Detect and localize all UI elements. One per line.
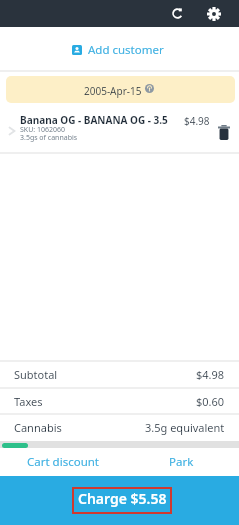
staticText: Banana OG - BANANA OG - 3.5 [20,113,168,127]
button[interactable]: Help [141,80,157,96]
button[interactable]: Refresh [164,0,191,27]
button[interactable]: Park [119,448,239,476]
button[interactable]: Add customer [0,27,239,70]
staticText: $0.60 [196,394,225,409]
staticText: Park [169,454,194,470]
staticText: SKU: 1062060 [20,125,66,135]
staticText: Charge $5.58 [78,489,167,508]
staticText: Add customer [88,42,164,58]
button[interactable]: 2005-Apr-15 [6,76,235,103]
staticText: 3.5g equivalent [145,420,225,435]
staticText: Cannabis [14,420,62,435]
staticText: Taxes [14,394,43,409]
button[interactable]: Cart discount [0,448,119,476]
button[interactable]: Settings [200,0,227,27]
staticText: Subtotal [14,367,58,382]
staticText: 2005-Apr-15 [84,84,142,98]
staticText: 3.5gs of cannabis [20,133,78,143]
button[interactable]: Charge $5.58 [0,476,239,525]
staticText: $4.98 [184,114,210,128]
button[interactable]: Banana OG - BANANA OG - 3.5 [0,103,239,152]
staticText: $4.98 [196,367,225,382]
button[interactable]: Delete item [209,120,239,144]
staticText: Cart discount [27,454,100,470]
